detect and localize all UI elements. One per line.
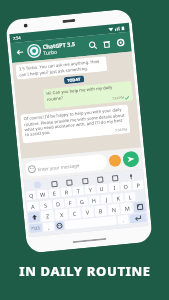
button[interactable]: R bbox=[60, 187, 72, 197]
staticText: U bbox=[99, 185, 105, 192]
button[interactable] bbox=[96, 176, 103, 182]
staticText: 7:54 bbox=[13, 35, 21, 41]
button[interactable]: Shift bbox=[28, 211, 41, 223]
button[interactable]: Of course! I'd be happy to help you with… bbox=[20, 104, 130, 143]
staticText: D bbox=[56, 200, 61, 207]
staticText: 3.5 Turbo. You can ask me anything. How … bbox=[18, 58, 104, 77]
staticText: E bbox=[52, 189, 57, 197]
staticText: IN DAILY ROUTINE bbox=[19, 262, 151, 280]
staticText: S bbox=[44, 201, 48, 209]
staticText: Q bbox=[29, 192, 34, 199]
staticText: O bbox=[123, 182, 129, 190]
button[interactable]: , bbox=[43, 222, 54, 232]
button[interactable]: Send bbox=[122, 150, 140, 168]
button[interactable]: Hi! Can you help me with my daily routin… bbox=[43, 81, 133, 109]
button[interactable]: A bbox=[27, 201, 39, 211]
staticText: R bbox=[64, 188, 69, 196]
button[interactable]: Enter bbox=[129, 213, 147, 223]
staticText: W bbox=[40, 190, 46, 198]
staticText: . bbox=[122, 216, 125, 223]
staticText: 7:54 PM bbox=[112, 95, 124, 101]
button[interactable]: P bbox=[132, 180, 144, 190]
button[interactable]: L bbox=[124, 192, 136, 202]
staticText: A bbox=[31, 203, 35, 210]
staticText: N bbox=[111, 206, 117, 213]
button[interactable]: . bbox=[117, 215, 129, 225]
button[interactable]: O bbox=[120, 181, 132, 191]
button[interactable]: T bbox=[72, 186, 84, 196]
button[interactable]: Search bbox=[85, 38, 100, 53]
button[interactable]: K bbox=[112, 193, 124, 203]
staticText: J bbox=[105, 196, 108, 203]
button[interactable] bbox=[51, 180, 57, 187]
button[interactable]: M bbox=[120, 202, 133, 214]
button[interactable]: E bbox=[48, 188, 60, 198]
staticText: Of course! I'd be happy to help you with… bbox=[23, 106, 127, 137]
button[interactable]: X bbox=[54, 208, 68, 221]
staticText: K bbox=[116, 194, 121, 202]
staticText: V bbox=[85, 208, 90, 216]
button[interactable]: D bbox=[52, 199, 64, 209]
button[interactable]: U bbox=[96, 183, 108, 193]
button[interactable]: I bbox=[108, 182, 120, 192]
staticText: , bbox=[48, 223, 50, 230]
button[interactable] bbox=[66, 179, 72, 185]
button[interactable]: Q bbox=[25, 190, 36, 200]
button[interactable]: F bbox=[64, 198, 76, 208]
staticText: B bbox=[98, 207, 103, 214]
staticText: 7:54 PM bbox=[115, 127, 127, 132]
button[interactable]: G bbox=[76, 196, 88, 206]
staticText: I bbox=[113, 184, 116, 191]
staticText: Enter your message bbox=[37, 162, 81, 172]
staticText: Z bbox=[46, 212, 50, 220]
staticText: Hi! Can you help me with my daily routin… bbox=[46, 83, 130, 103]
button[interactable]: Settings bbox=[113, 35, 128, 50]
button[interactable]: Enter your message bbox=[25, 153, 108, 177]
button[interactable]: Symbols bbox=[29, 223, 42, 233]
staticText: ChatGPT 3.5 bbox=[42, 40, 76, 50]
button[interactable]: Delete chat bbox=[99, 36, 114, 52]
button[interactable]: N bbox=[107, 203, 120, 216]
button[interactable] bbox=[26, 43, 42, 59]
button[interactable]: Emoji bbox=[55, 221, 64, 231]
button[interactable] bbox=[81, 177, 88, 184]
button[interactable]: Y bbox=[84, 185, 96, 195]
button[interactable]: H bbox=[88, 195, 100, 205]
button[interactable]: S bbox=[39, 200, 52, 210]
staticText: T bbox=[76, 187, 81, 194]
staticText: P bbox=[136, 181, 141, 189]
button[interactable]: V bbox=[81, 206, 94, 218]
button[interactable] bbox=[111, 174, 118, 181]
button[interactable]: Voice bbox=[127, 173, 134, 179]
staticText: C bbox=[72, 210, 77, 217]
staticText: TODAY bbox=[67, 77, 81, 83]
button[interactable]: Z bbox=[40, 210, 54, 222]
button[interactable]: 3.5 Turbo. You can ask me anything. How … bbox=[15, 56, 107, 80]
button[interactable]: Backspace bbox=[133, 201, 146, 213]
staticText: Y bbox=[88, 186, 93, 193]
button[interactable]: Space bbox=[64, 216, 117, 230]
button[interactable]: B bbox=[94, 205, 107, 217]
staticText: F bbox=[68, 199, 72, 206]
staticText: G bbox=[79, 198, 85, 205]
button[interactable]: Attach bbox=[108, 154, 122, 167]
staticText: Turbo bbox=[43, 49, 58, 57]
button[interactable]: W bbox=[36, 189, 48, 199]
staticText: L bbox=[128, 193, 132, 201]
staticText: M bbox=[124, 204, 130, 212]
button[interactable]: Back bbox=[14, 46, 27, 59]
button[interactable]: Google bbox=[34, 181, 41, 188]
staticText: X bbox=[60, 211, 64, 218]
staticText: H bbox=[91, 197, 97, 204]
button[interactable]: J bbox=[100, 194, 112, 204]
staticText: ?123 bbox=[31, 225, 40, 231]
button[interactable]: C bbox=[68, 207, 81, 219]
